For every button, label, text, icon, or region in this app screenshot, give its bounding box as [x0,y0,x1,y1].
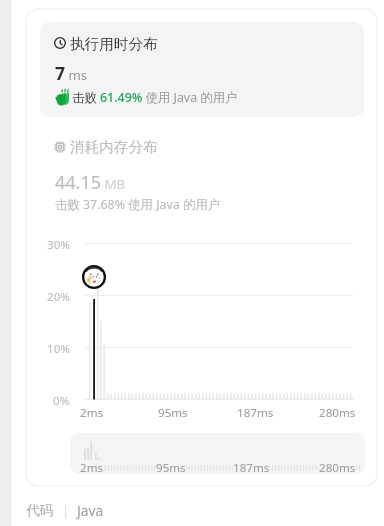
staticText: | [62,501,70,519]
button[interactable]: 代码 [26,499,104,521]
staticText: Java [77,501,104,520]
staticText: 187ms [233,460,270,474]
staticText: 95ms [158,405,188,421]
staticText: 2ms [80,460,104,474]
other: Runtime [54,37,66,49]
staticText: 280ms [319,460,356,474]
staticText: 代码 [26,502,54,519]
staticText: 0% [53,393,70,409]
staticText: 执行用时分布 [70,35,158,53]
staticText: 击败 61.49% 使用 Java 的用户 [72,89,238,106]
staticText: 95ms [156,460,186,474]
staticText: 20% [47,289,70,305]
staticText: 30% [47,237,70,253]
staticText: 187ms [237,405,274,421]
staticText: 44.15 MB [55,170,125,195]
staticText: 消耗内存分布 [70,138,158,156]
staticText: 击败 37.68% 使用 Java 的用户 [55,196,221,213]
staticText: 7 ms [55,61,88,85]
staticText: 280ms [319,405,356,421]
button[interactable]: 2ms [70,433,365,474]
other: Memory [54,141,66,153]
button[interactable] [40,22,364,117]
staticText: 10% [47,341,70,357]
staticText: 2ms [80,405,104,421]
